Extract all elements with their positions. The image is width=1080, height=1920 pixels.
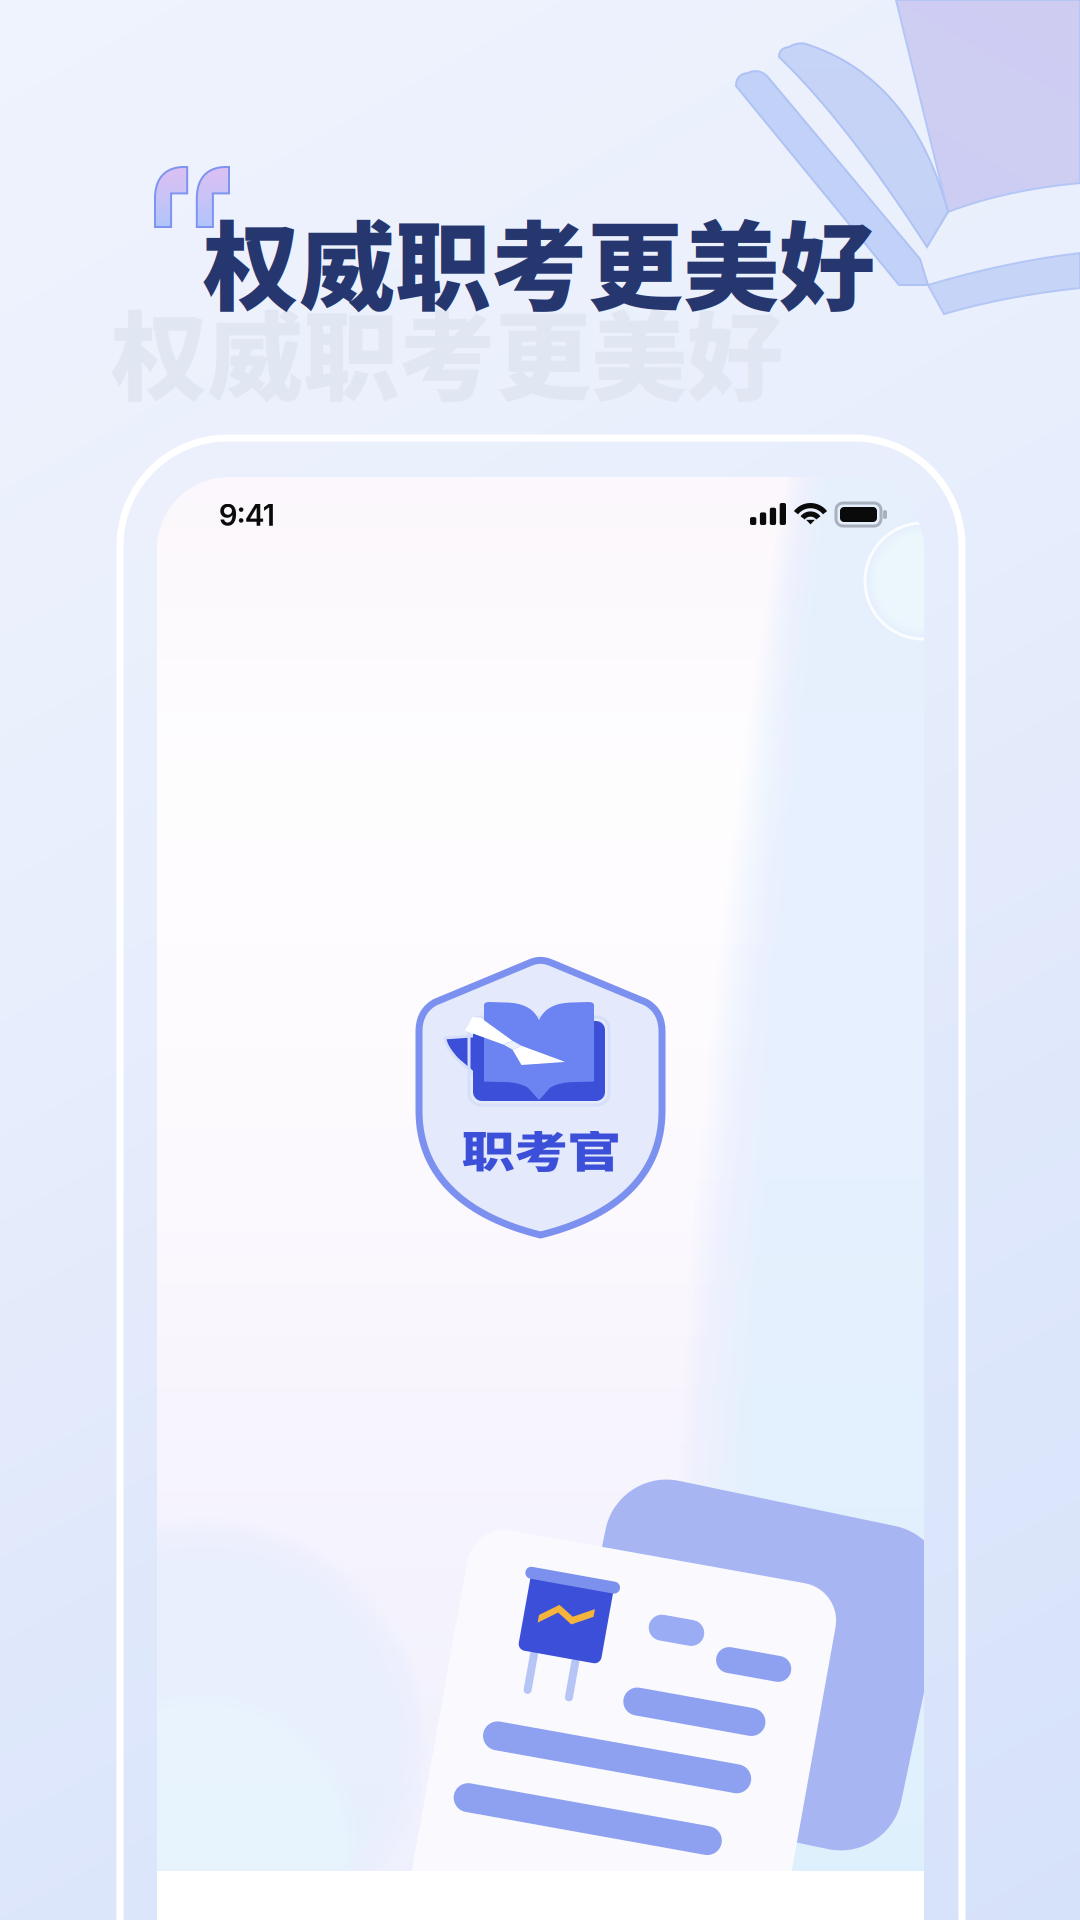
- staticText: 权威职考更美好: [111, 280, 783, 419]
- staticText: 权威职考更美好: [203, 190, 875, 329]
- staticText: 职考官: [461, 1110, 620, 1188]
- staticText: 9:41: [219, 497, 275, 533]
- button[interactable]: 9:41: [219, 497, 275, 533]
